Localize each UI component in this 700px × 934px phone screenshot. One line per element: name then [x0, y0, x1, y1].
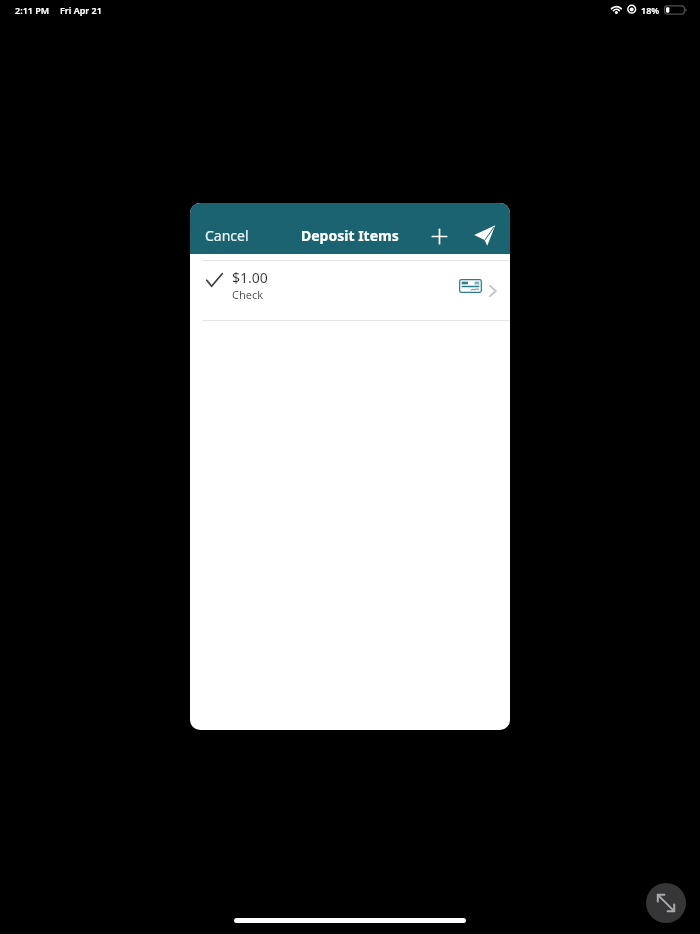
- staticText: Deposit Items: [301, 226, 399, 245]
- button[interactable]: [646, 883, 686, 923]
- staticText: 18%: [641, 4, 660, 16]
- staticText: 2:11 PM: [15, 4, 50, 16]
- button[interactable]: Cancel: [197, 218, 257, 253]
- staticText: $1.00: [232, 268, 268, 287]
- staticText: Fri Apr 21: [60, 4, 102, 16]
- button[interactable]: $1.00: [190, 261, 510, 320]
- staticText: Cancel: [205, 226, 249, 245]
- staticText: Check: [232, 287, 264, 302]
- button[interactable]: [426, 223, 453, 250]
- button[interactable]: [470, 221, 500, 250]
